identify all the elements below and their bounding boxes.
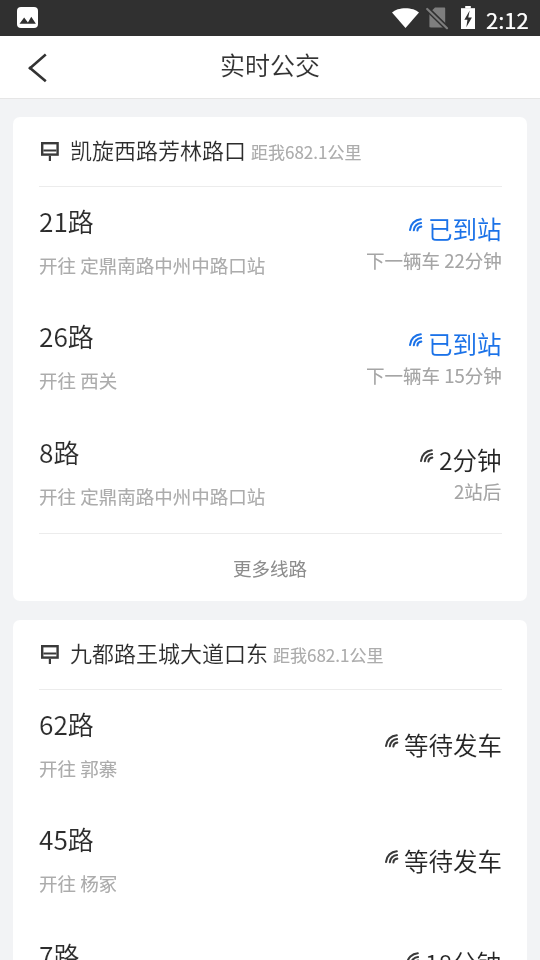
button[interactable]: 九都路王城大道口东 (13, 620, 527, 689)
staticText: 下一辆车 22分钟 (366, 247, 502, 274)
staticText: 实时公交 (220, 46, 321, 82)
staticText: 已到站 (428, 326, 502, 361)
staticText: 开往 郭寨 (39, 755, 118, 782)
button[interactable]: 九都路王城大道口东 (13, 620, 527, 960)
staticText: 九都路王城大道口东 (70, 636, 269, 668)
staticText: 下一辆车 15分钟 (366, 362, 502, 389)
staticText: 18分钟 (425, 945, 502, 960)
staticText: 21路 (39, 202, 94, 240)
button[interactable]: 更多线路 (13, 534, 527, 601)
staticText: 开往 西关 (39, 367, 118, 394)
staticText: 开往 定鼎南路中州中路口站 (39, 483, 266, 510)
staticText: 等待发车 (404, 727, 502, 762)
button[interactable]: 21路 (13, 187, 527, 302)
staticText: 更多线路 (233, 555, 308, 582)
button[interactable]: 62路 (13, 690, 527, 805)
staticText: 开往 定鼎南路中州中路口站 (39, 252, 266, 279)
staticText: 开往 杨冢 (39, 870, 118, 897)
button[interactable]: 凯旋西路芳林路口 (13, 117, 527, 601)
staticText: 距我682.1公里 (273, 642, 384, 667)
staticText: 已到站 (428, 211, 502, 246)
button[interactable]: 凯旋西路芳林路口 (13, 117, 527, 186)
button[interactable]: 45路 (13, 805, 527, 921)
button[interactable]: 26路 (13, 302, 527, 418)
staticText: 距我682.1公里 (251, 139, 362, 164)
staticText: 62路 (39, 705, 94, 743)
staticText: 45路 (39, 820, 94, 858)
staticText: 26路 (39, 317, 94, 355)
button[interactable]: Back (11, 36, 63, 99)
staticText: 2站后 (454, 478, 502, 505)
staticText: 2:12 (486, 3, 529, 35)
button[interactable]: 7路 (13, 921, 527, 960)
staticText: 8路 (39, 433, 80, 471)
button[interactable]: 8路 (13, 418, 527, 533)
staticText: 7路 (39, 936, 80, 960)
staticText: 凯旋西路芳林路口 (70, 133, 247, 165)
staticText: 2分钟 (439, 442, 502, 477)
staticText: 等待发车 (404, 843, 502, 878)
